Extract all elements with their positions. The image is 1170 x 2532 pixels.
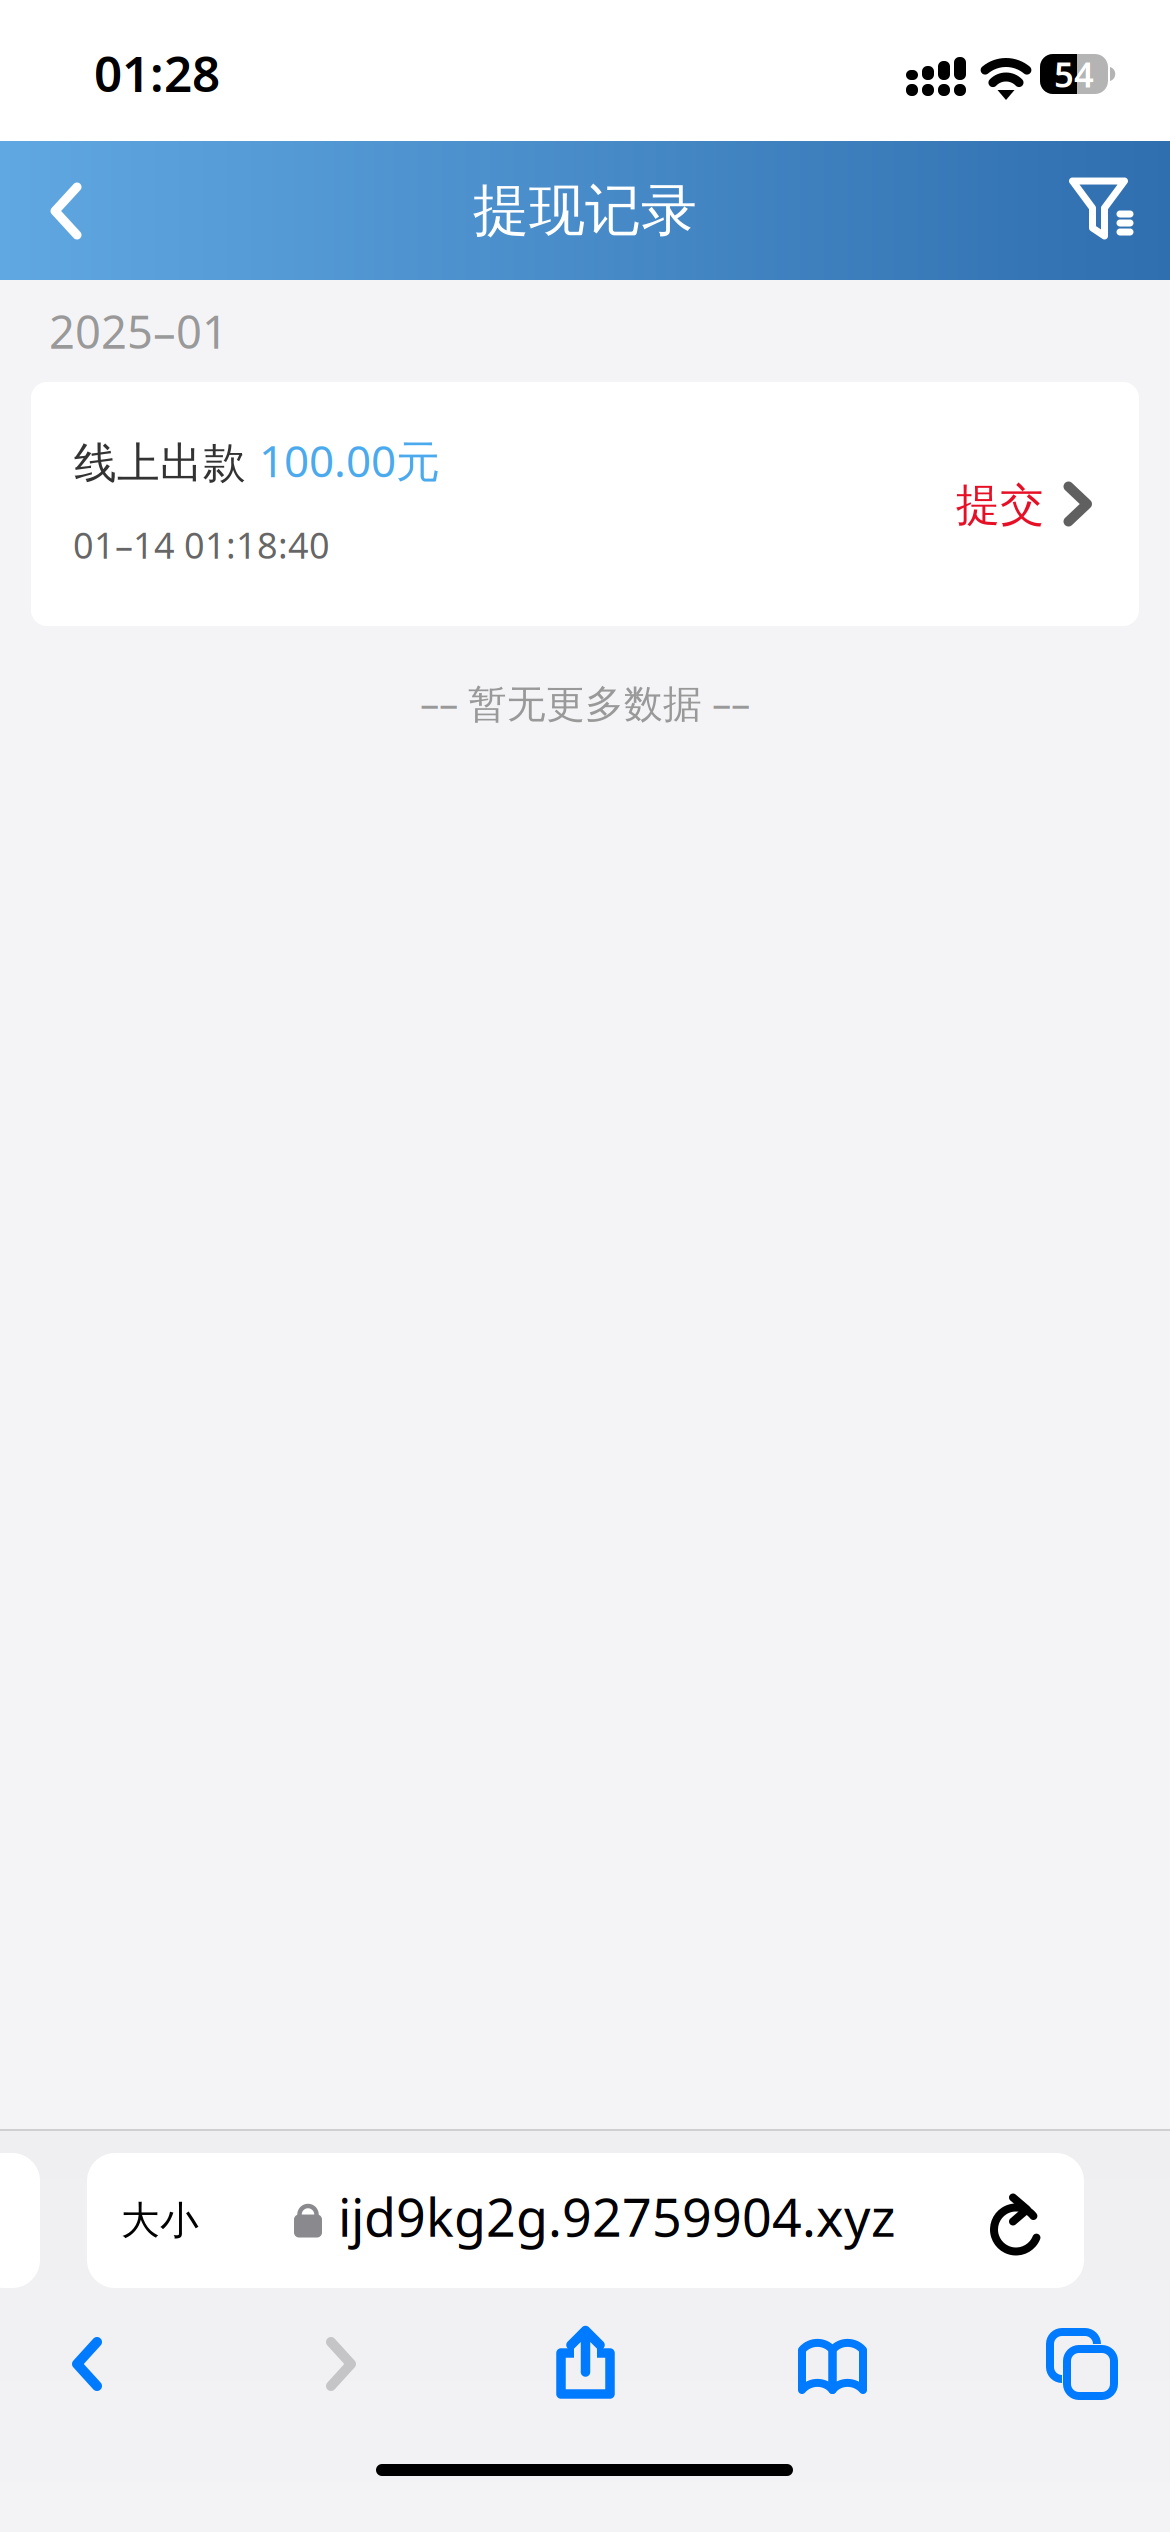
staticText: 提现记录 xyxy=(473,176,697,245)
staticText: 2025–01 xyxy=(49,301,228,361)
staticText: 大小 xyxy=(121,2197,199,2244)
staticText: 提交 xyxy=(956,478,1044,532)
button[interactable]: Filter xyxy=(1049,159,1161,263)
staticText: 100.00元 xyxy=(259,431,440,489)
button[interactable]: Bookmarks xyxy=(774,2316,892,2410)
staticText: 线上出款 xyxy=(74,437,246,489)
button[interactable]: Share xyxy=(526,2316,644,2410)
staticText: 01:28 xyxy=(94,40,220,105)
button[interactable]: Reload xyxy=(957,2159,1077,2294)
staticText: ijd9kg2g.92759904.xyz xyxy=(338,2182,895,2251)
staticText: 01–14 01:18:40 xyxy=(73,521,330,569)
button[interactable]: 线上出款 xyxy=(31,382,1139,626)
staticText: 54 xyxy=(1054,51,1094,97)
button[interactable]: Back xyxy=(19,159,131,263)
staticText: –– 暂无更多数据 –– xyxy=(420,677,750,728)
button[interactable]: 大小 xyxy=(87,2153,233,2288)
button[interactable]: Forward xyxy=(274,2320,392,2414)
button[interactable]: Back xyxy=(46,2320,164,2414)
button[interactable]: Tabs xyxy=(1014,2284,1132,2378)
